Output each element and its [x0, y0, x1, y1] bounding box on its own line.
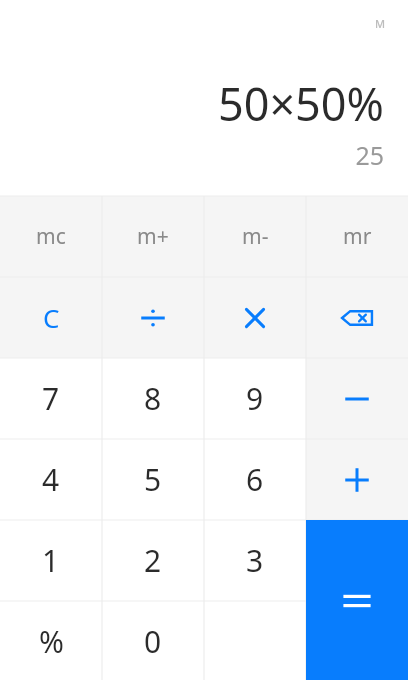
staticText: 50×50%	[217, 73, 384, 134]
button[interactable]: 6	[204, 439, 306, 520]
button[interactable]: Plus	[306, 439, 408, 520]
staticText: mc	[36, 222, 66, 251]
button[interactable]: 0	[102, 601, 204, 680]
button[interactable]: 8	[102, 358, 204, 439]
button[interactable]: 5	[102, 439, 204, 520]
staticText: 3	[246, 540, 264, 581]
button[interactable]: 4	[0, 439, 102, 520]
button[interactable]: 2	[102, 520, 204, 601]
button[interactable]: Divide	[102, 277, 204, 358]
staticText: 4	[42, 459, 60, 500]
staticText: mr	[343, 222, 372, 251]
staticText: M	[375, 16, 386, 31]
button[interactable]: m+	[102, 196, 204, 277]
staticText: 9	[246, 378, 264, 419]
button[interactable]: 9	[204, 358, 306, 439]
button[interactable]: %	[0, 601, 102, 680]
button[interactable]: Backspace	[306, 277, 408, 358]
button[interactable]: mc	[0, 196, 102, 277]
button[interactable]: m-	[204, 196, 306, 277]
button[interactable]: Equals	[306, 520, 408, 680]
button[interactable]: mr	[306, 196, 408, 277]
button[interactable]: Minus	[306, 358, 408, 439]
staticText: 0	[144, 621, 162, 662]
staticText: m+	[137, 222, 169, 251]
button[interactable]: 1	[0, 520, 102, 601]
staticText: 5	[144, 459, 162, 500]
button[interactable]: 3	[204, 520, 306, 601]
staticText: 8	[144, 378, 162, 419]
staticText: %	[39, 621, 64, 662]
staticText: 2	[144, 540, 162, 581]
staticText: 6	[246, 459, 264, 500]
staticText: C	[43, 300, 60, 335]
button[interactable]: Multiply	[204, 277, 306, 358]
staticText: 1	[42, 540, 60, 581]
staticText: 25	[355, 138, 384, 172]
staticText: 7	[42, 378, 60, 419]
staticText: m-	[242, 222, 269, 251]
button[interactable]: C	[0, 277, 102, 358]
button[interactable]: 7	[0, 358, 102, 439]
